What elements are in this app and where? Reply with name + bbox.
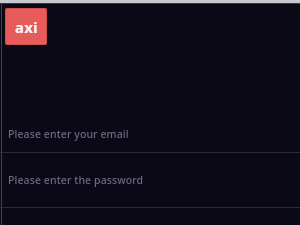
button[interactable]: axi home [5, 8, 47, 45]
button[interactable]: Please enter your email [0, 116, 300, 153]
button[interactable]: Please enter the password [0, 153, 300, 208]
staticText: Please enter your email [8, 127, 129, 141]
staticText: Please enter the password [8, 173, 144, 187]
staticText: axi [15, 17, 38, 37]
button[interactable] [0, 208, 300, 221]
